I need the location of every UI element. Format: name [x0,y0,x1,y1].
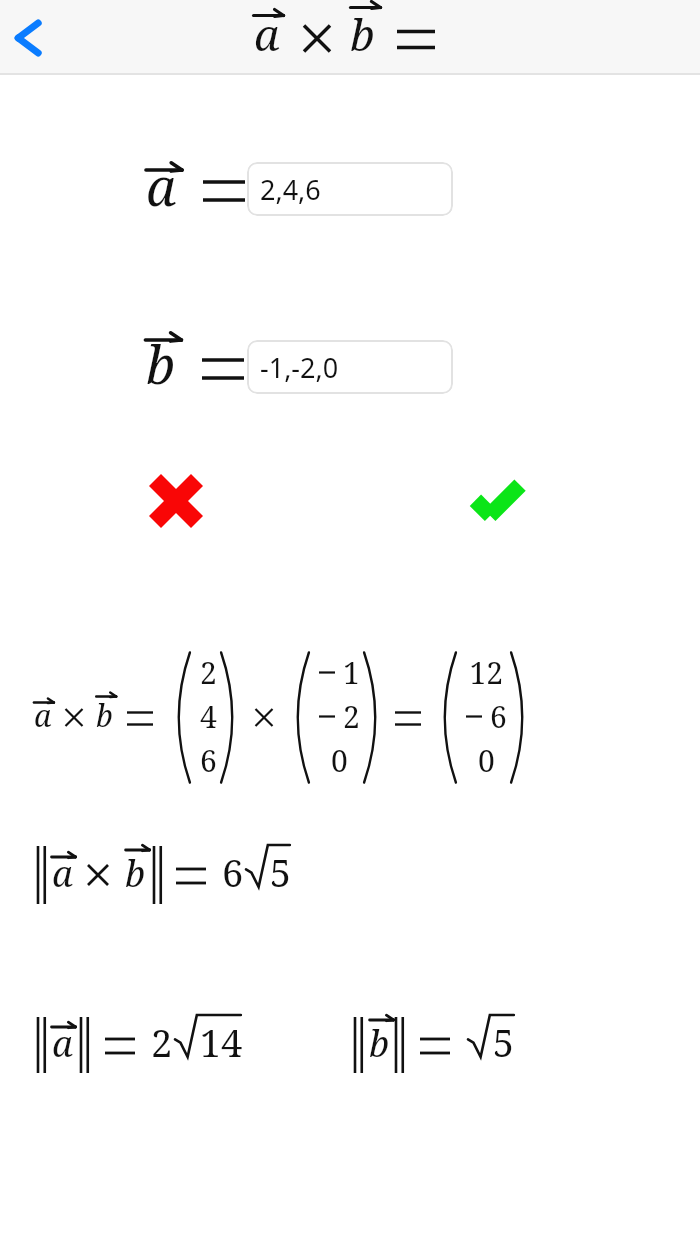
button[interactable]: -1,-2,0 [247,340,453,394]
button[interactable]: Back [4,9,62,67]
button[interactable]: Incorrect [140,465,212,537]
button[interactable]: Correct [461,465,533,537]
staticText: 2,4,6 [260,171,321,208]
button[interactable]: 2,4,6 [247,162,453,216]
staticText: -1,-2,0 [260,349,339,386]
